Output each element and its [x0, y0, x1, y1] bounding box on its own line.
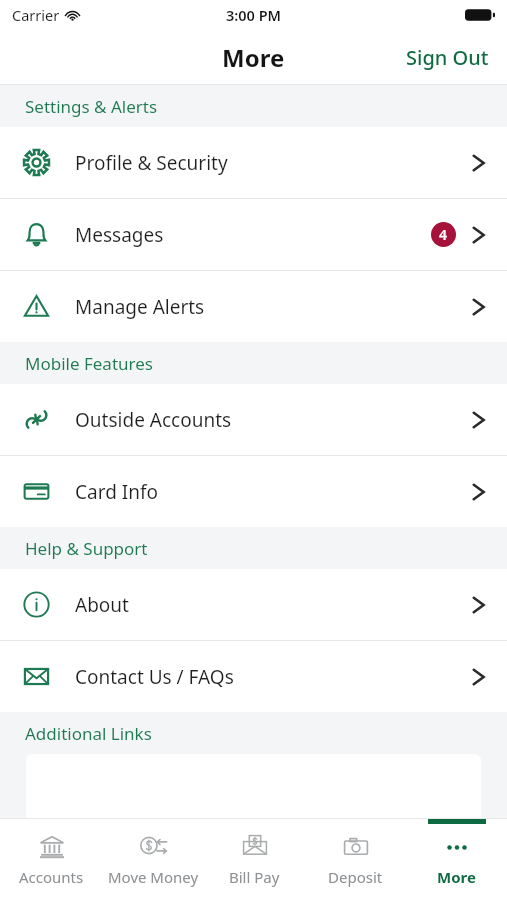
staticText: 4 — [439, 225, 448, 244]
button[interactable]: Messages — [0, 199, 507, 270]
staticText: More — [437, 867, 476, 887]
button[interactable]: About — [0, 569, 507, 640]
button[interactable]: Profile & Security — [0, 127, 507, 198]
button[interactable]: More — [406, 818, 507, 900]
staticText: Deposit — [328, 867, 383, 887]
button[interactable]: Contact Us / FAQs — [0, 641, 507, 712]
staticText: Move Money — [108, 867, 199, 887]
button[interactable]: Deposit — [305, 818, 406, 900]
button[interactable]: Card Info — [0, 456, 507, 527]
staticText: Card Info — [75, 479, 158, 505]
staticText: More — [222, 41, 285, 74]
staticText: About — [75, 592, 129, 618]
staticText: Additional Links — [25, 722, 152, 745]
staticText: Contact Us / FAQs — [75, 664, 234, 690]
staticText: Manage Alerts — [75, 294, 205, 320]
button[interactable]: Outside Accounts — [0, 384, 507, 455]
staticText: Messages — [75, 222, 164, 248]
staticText: Accounts — [19, 867, 84, 887]
staticText: Outside Accounts — [75, 407, 232, 433]
button[interactable]: Move Money — [102, 818, 204, 900]
staticText: 3:00 PM — [226, 5, 282, 25]
button[interactable]: Manage Alerts — [0, 271, 507, 342]
staticText: Mobile Features — [25, 352, 153, 375]
staticText: Help & Support — [25, 537, 148, 560]
staticText: Profile & Security — [75, 150, 228, 176]
button[interactable]: Bill Pay — [204, 818, 305, 900]
staticText: Carrier — [12, 5, 60, 25]
staticText: Settings & Alerts — [25, 95, 158, 118]
button[interactable]: Accounts — [0, 818, 102, 900]
staticText: Bill Pay — [229, 867, 280, 887]
button[interactable]: Sign Out — [388, 36, 507, 79]
staticText: Sign Out — [406, 44, 489, 71]
